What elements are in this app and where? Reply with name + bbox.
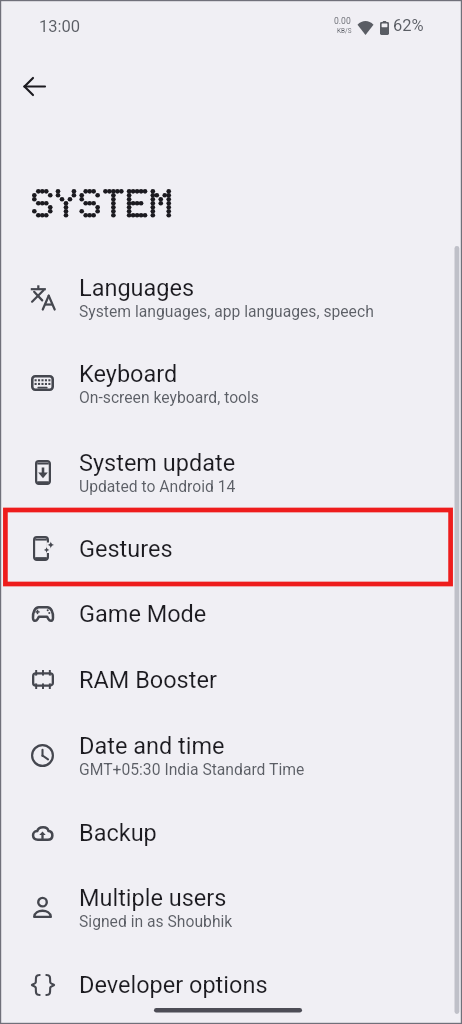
staticText: System languages, app languages, speech [79,302,374,320]
staticText: 62% [393,16,424,35]
button[interactable]: Backup [0,800,462,865]
staticText: On-screen keyboard, tools [79,388,259,406]
staticText: Date and time [79,732,225,760]
staticText: RAM Booster [79,666,217,694]
button[interactable]: RAM Booster [0,647,462,712]
staticText: System update [79,449,236,477]
button[interactable]: System update [0,429,462,515]
staticText: Languages [79,274,195,302]
button[interactable]: Game Mode [0,581,462,646]
staticText: Backup [79,819,157,847]
staticText: GMT+05:30 India Standard Time [79,760,305,778]
staticText: Keyboard [79,360,178,388]
button[interactable]: Developer options [0,952,462,1017]
button[interactable]: Languages [0,254,462,340]
staticText: Game Mode [79,600,207,628]
staticText: Multiple users [79,884,227,912]
staticText: Developer options [79,971,268,999]
staticText: 13:00 [39,17,81,36]
button[interactable]: Back [12,64,56,108]
button[interactable]: Gestures [0,516,462,581]
button[interactable]: Date and time [0,712,462,798]
button[interactable]: Multiple users [0,864,462,950]
staticText: Signed in as Shoubhik [79,912,233,930]
button[interactable]: Keyboard [0,340,462,426]
staticText: Gestures [79,535,173,563]
staticText: Updated to Android 14 [79,477,236,495]
staticText: 0.00 [334,16,351,26]
staticText: KB/S [337,27,352,35]
